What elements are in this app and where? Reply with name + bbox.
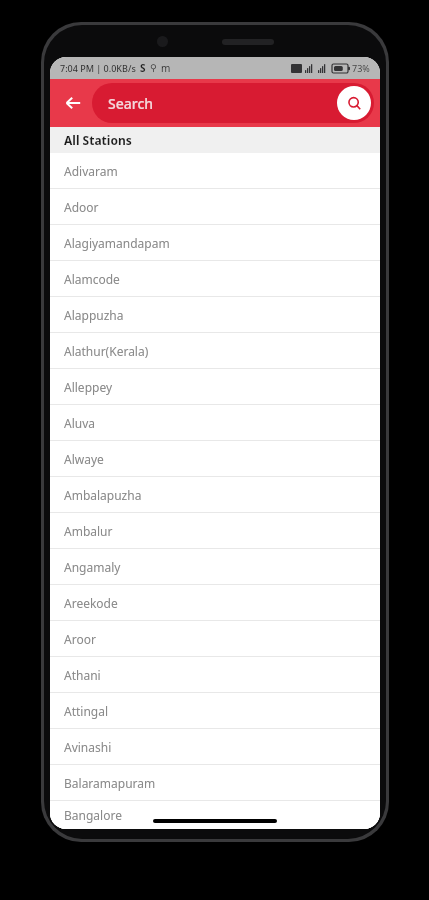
staticText: Alathur(Kerala) xyxy=(64,343,149,359)
staticText: Balaramapuram xyxy=(64,775,156,791)
button[interactable]: Alathur(Kerala) xyxy=(50,333,380,368)
button[interactable]: Alleppey xyxy=(50,369,380,404)
button[interactable]: Aluva xyxy=(50,405,380,440)
staticText: S xyxy=(140,61,146,75)
button[interactable]: Attingal xyxy=(50,693,380,728)
staticText: Areekode xyxy=(64,595,118,611)
staticText: Alleppey xyxy=(64,379,113,395)
staticText: Athani xyxy=(64,667,101,683)
button[interactable]: Avinashi xyxy=(50,729,380,764)
button[interactable]: Athani xyxy=(50,657,380,692)
staticText: Alwaye xyxy=(64,451,104,467)
button[interactable]: Search xyxy=(92,83,374,123)
button[interactable]: Alappuzha xyxy=(50,297,380,332)
staticText: Adoor xyxy=(64,199,99,215)
staticText: Angamaly xyxy=(64,559,121,575)
staticText: Aluva xyxy=(64,415,96,431)
staticText: m xyxy=(161,61,171,75)
staticText: Ambalapuzha xyxy=(64,487,142,503)
button[interactable]: Alwaye xyxy=(50,441,380,476)
button[interactable]: Areekode xyxy=(50,585,380,620)
button[interactable]: Angamaly xyxy=(50,549,380,584)
staticText: Alamcode xyxy=(64,271,120,287)
button[interactable]: Ambalapuzha xyxy=(50,477,380,512)
staticText: Alappuzha xyxy=(64,307,124,323)
button[interactable]: Alagiyamandapam xyxy=(50,225,380,260)
staticText: Ambalur xyxy=(64,523,113,539)
staticText: Aroor xyxy=(64,631,96,647)
button[interactable]: Bangalore xyxy=(50,801,380,829)
staticText: Search xyxy=(108,94,154,113)
button[interactable]: Aroor xyxy=(50,621,380,656)
button[interactable]: Ambalur xyxy=(50,513,380,548)
button[interactable]: Adivaram xyxy=(50,153,380,188)
button[interactable]: All Stations xyxy=(50,127,380,153)
staticText: Alagiyamandapam xyxy=(64,235,170,251)
button[interactable]: Alamcode xyxy=(50,261,380,296)
staticText: All Stations xyxy=(64,132,132,148)
staticText: 73% xyxy=(352,62,370,74)
staticText: ⚲ xyxy=(150,63,157,73)
staticText: Avinashi xyxy=(64,739,112,755)
button[interactable]: Back xyxy=(56,86,90,120)
staticText: Adivaram xyxy=(64,163,118,179)
button[interactable]: Balaramapuram xyxy=(50,765,380,800)
button[interactable]: Search xyxy=(337,86,371,120)
staticText: Attingal xyxy=(64,703,109,719)
staticText: Bangalore xyxy=(64,807,122,823)
staticText: 7:04 PM | 0.0KB/s xyxy=(60,62,136,74)
button[interactable]: Adoor xyxy=(50,189,380,224)
